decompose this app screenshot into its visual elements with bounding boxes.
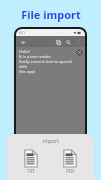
staticText: import: [43, 138, 59, 145]
staticText: File import: [21, 7, 81, 22]
staticText: It is a text reader.: [19, 54, 52, 59]
button[interactable]: Back: [19, 38, 27, 46]
staticText: Hello!: [19, 49, 30, 54]
staticText: this app!: [19, 69, 36, 74]
button[interactable]: Copy: [54, 38, 62, 46]
staticText: 4:21: [19, 31, 25, 35]
staticText: Easily convert text to speech with: [19, 59, 75, 69]
button[interactable]: Search: [64, 38, 72, 46]
staticText: PDF: [66, 168, 75, 174]
button[interactable]: PDF: [55, 149, 85, 175]
button[interactable]: Clear text: [76, 49, 83, 56]
button[interactable]: TXT: [16, 149, 46, 175]
button[interactable]: More options: [74, 38, 82, 46]
staticText: TXT: [27, 168, 35, 174]
